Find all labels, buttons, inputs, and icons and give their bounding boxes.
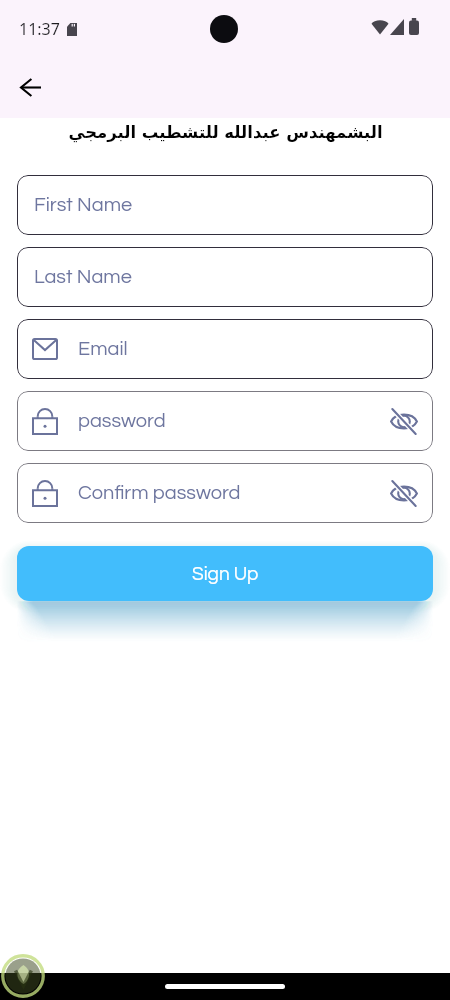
button[interactable]: Last Name (17, 247, 433, 307)
button[interactable]: Toggle password visibility (386, 475, 422, 511)
button[interactable]: Email (17, 319, 433, 379)
staticText: First Name (34, 195, 133, 216)
button[interactable]: Toggle password visibility (386, 403, 422, 439)
button[interactable]: Back (8, 65, 53, 110)
staticText: Confirm password (78, 483, 241, 504)
staticText: Email (78, 339, 128, 360)
button[interactable]: Sign Up (17, 546, 433, 601)
button[interactable]: Confirm password (17, 463, 433, 523)
button[interactable]: First Name (17, 175, 433, 235)
staticText: password (78, 411, 166, 432)
staticText: Sign Up (192, 564, 259, 584)
staticText: 11:37 (19, 18, 60, 40)
staticText: Last Name (34, 267, 132, 288)
button[interactable]: password (17, 391, 433, 451)
staticText: البشمهندس عبدالله للتشطيب البرمجي (68, 123, 383, 142)
